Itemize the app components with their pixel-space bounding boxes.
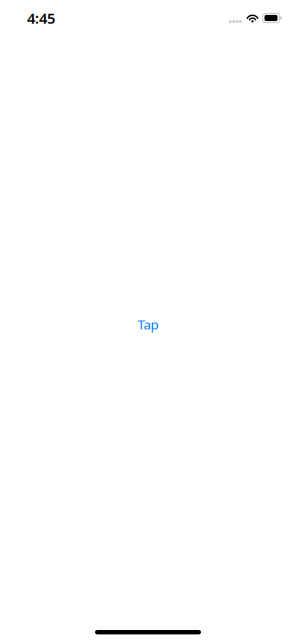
staticText: Tap <box>137 315 158 333</box>
button[interactable]: Tap <box>137 315 158 333</box>
staticText: 4:45 <box>27 8 55 28</box>
